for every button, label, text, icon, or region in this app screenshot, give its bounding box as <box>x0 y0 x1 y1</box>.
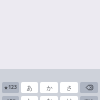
other: Symbols and numbers <box>4 84 17 91</box>
staticText: な <box>46 97 53 100</box>
staticText: 変換 <box>84 98 94 100</box>
staticText: か <box>46 84 53 92</box>
staticText: た <box>26 97 33 100</box>
button[interactable]: Convert <box>80 96 98 100</box>
button[interactable]: は <box>60 96 78 100</box>
button[interactable]: な <box>40 96 58 100</box>
staticText: ABC <box>6 98 16 100</box>
button[interactable]: あ <box>21 82 38 93</box>
button[interactable]: か <box>40 82 58 93</box>
button[interactable]: Symbols and numbers <box>2 82 19 93</box>
button[interactable]: さ <box>60 82 78 93</box>
staticText: 123 <box>8 84 17 91</box>
staticText: は <box>66 97 73 100</box>
staticText: あ <box>26 84 33 92</box>
button[interactable]: Backspace <box>80 82 98 93</box>
button[interactable]: た <box>21 96 38 100</box>
button[interactable]: Alphabet mode <box>2 96 19 100</box>
staticText: さ <box>66 84 73 92</box>
